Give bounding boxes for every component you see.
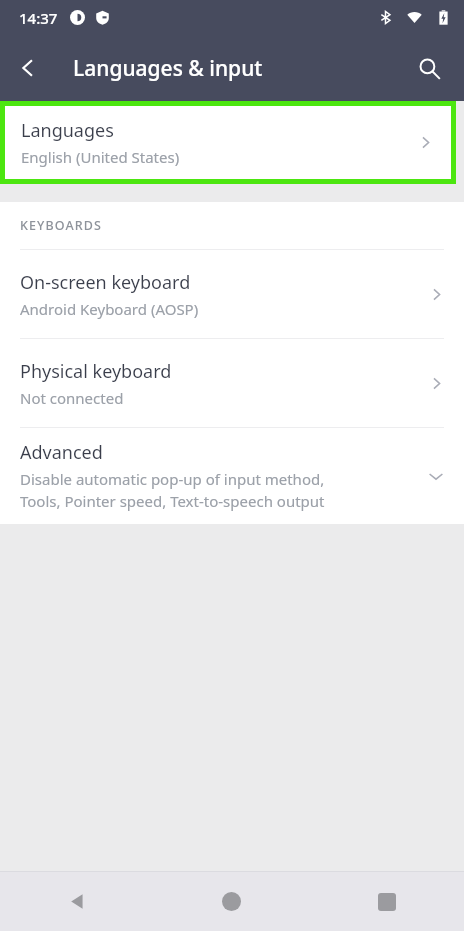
staticText: English (United States) — [21, 147, 180, 167]
button[interactable]: Search — [401, 40, 457, 96]
staticText: Disable automatic pop-up of input method… — [20, 469, 325, 512]
button[interactable]: Back — [0, 872, 154, 931]
staticText: Languages — [21, 118, 114, 143]
button[interactable]: Physical keyboard — [0, 339, 464, 427]
staticText: Android Keyboard (AOSP) — [20, 299, 199, 319]
button[interactable]: On-screen keyboard — [0, 250, 464, 338]
button[interactable]: Home — [154, 872, 309, 931]
button[interactable]: Advanced — [0, 428, 464, 524]
staticText: Physical keyboard — [20, 359, 172, 384]
staticText: KEYBOARDS — [20, 217, 102, 234]
staticText: Advanced — [20, 440, 103, 465]
staticText: Not connected — [20, 388, 124, 408]
staticText: 14:37 — [19, 8, 58, 28]
button[interactable]: Languages — [5, 106, 451, 179]
button[interactable]: Recent apps — [309, 872, 464, 931]
staticText: On-screen keyboard — [20, 270, 191, 295]
button[interactable]: Back — [0, 40, 56, 96]
staticText: Languages & input — [73, 54, 263, 83]
